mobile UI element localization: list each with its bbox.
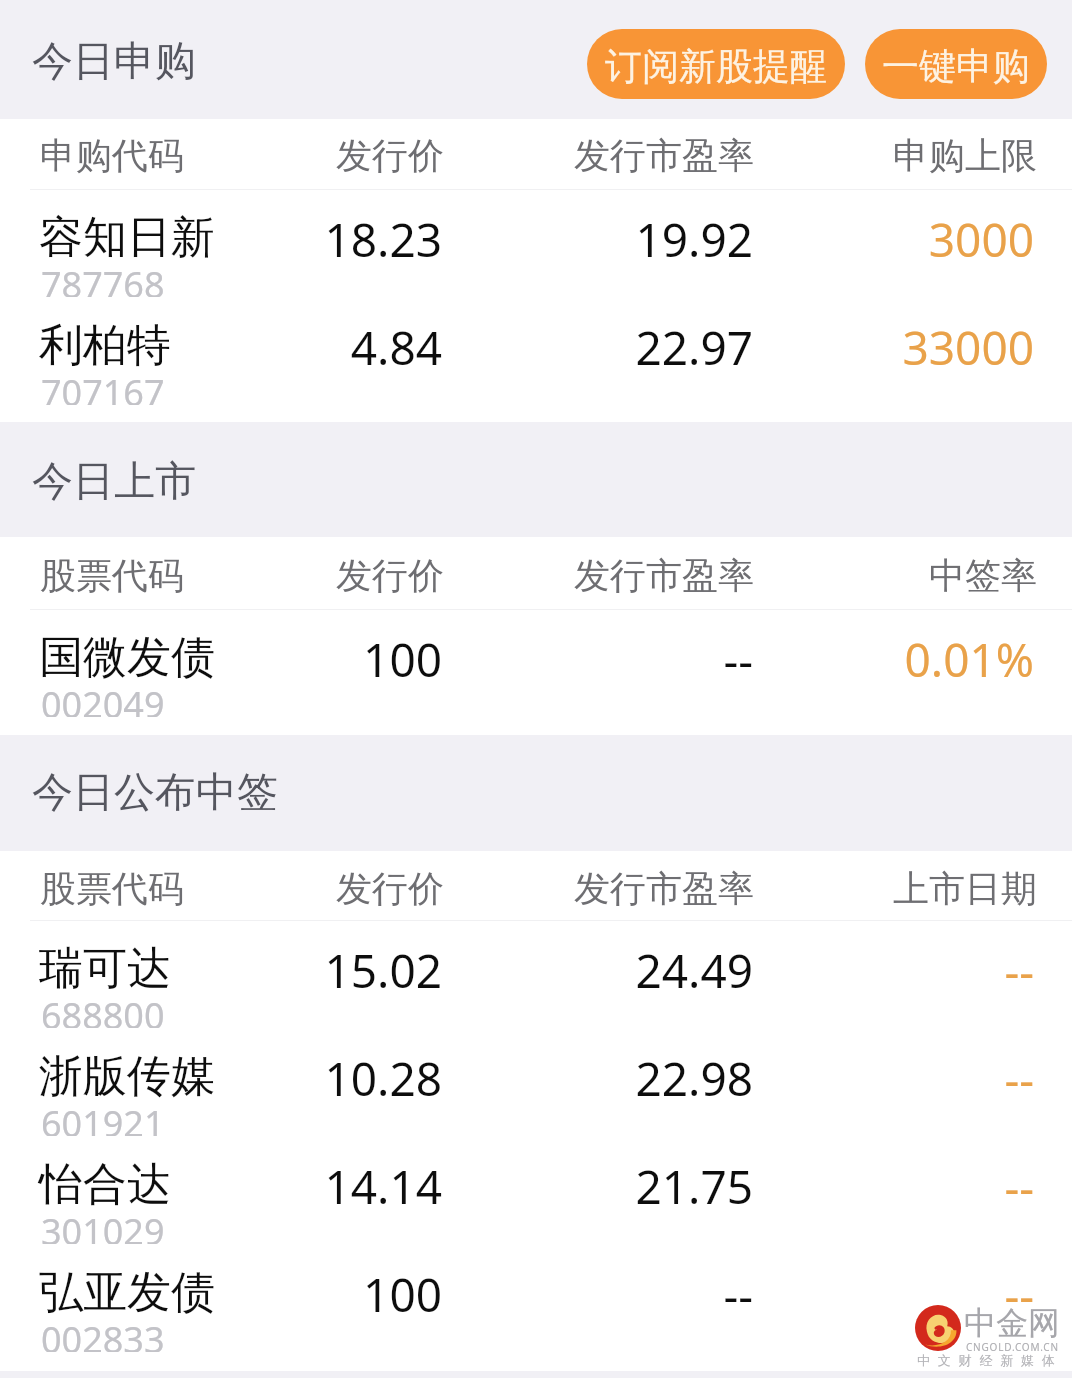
staticText: 787768 [41, 260, 165, 309]
button[interactable]: 容知日新 [0, 189, 1072, 297]
button[interactable]: 国微发债 [0, 609, 1072, 717]
staticText: 601921 [41, 1099, 165, 1148]
staticText: 发行价 [336, 553, 444, 598]
staticText: CNGOLD.COM.CN [966, 1340, 1059, 1354]
staticText: 688800 [41, 991, 165, 1040]
staticText: 100 [0, 628, 442, 691]
staticText: 上市日期 [893, 866, 1037, 911]
staticText: -- [0, 1047, 1034, 1110]
staticText: 中签率 [929, 553, 1037, 598]
staticText: 今日上市 [32, 456, 196, 508]
staticText: 瑞可达 [39, 941, 171, 996]
button[interactable]: 一键申购 [865, 29, 1047, 99]
staticText: -- [0, 628, 753, 691]
staticText: 002833 [41, 1315, 165, 1364]
button[interactable]: 利柏特 [0, 297, 1072, 405]
staticText: 浙版传媒 [39, 1049, 215, 1104]
staticText: 发行市盈率 [574, 553, 754, 598]
button[interactable]: 浙版传媒 [0, 1028, 1072, 1136]
staticText: 4.84 [0, 316, 442, 379]
staticText: 今日申购 [32, 36, 196, 88]
staticText: 002049 [41, 680, 165, 729]
button[interactable]: 瑞可达 [0, 920, 1072, 1028]
staticText: 怡合达 [39, 1157, 171, 1212]
staticText: 申购代码 [40, 133, 184, 178]
staticText: 3000 [0, 208, 1034, 271]
button[interactable]: 怡合达 [0, 1136, 1072, 1244]
button[interactable]: 弘亚发债 [0, 1244, 1072, 1352]
staticText: 发行市盈率 [574, 866, 754, 911]
staticText: 0.01% [0, 628, 1034, 691]
staticText: 15.02 [0, 939, 442, 1002]
staticText: 弘亚发债 [39, 1265, 215, 1320]
staticText: 国微发债 [39, 630, 215, 685]
staticText: 707167 [41, 368, 165, 417]
staticText: 一键申购 [882, 43, 1030, 90]
staticText: 发行价 [336, 866, 444, 911]
staticText: 发行市盈率 [574, 133, 754, 178]
staticText: -- [0, 1155, 1034, 1218]
staticText: 发行价 [336, 133, 444, 178]
staticText: 订阅新股提醒 [605, 43, 827, 90]
staticText: 10.28 [0, 1047, 442, 1110]
staticText: 容知日新 [39, 210, 215, 265]
other: 中金网 logo [915, 1305, 961, 1351]
staticText: 24.49 [0, 939, 753, 1002]
staticText: -- [0, 1263, 1034, 1326]
staticText: 中金网 [964, 1303, 1060, 1343]
staticText: 19.92 [0, 208, 753, 271]
staticText: 22.97 [0, 316, 753, 379]
staticText: 100 [0, 1263, 442, 1326]
staticText: 301029 [41, 1207, 165, 1256]
staticText: 股票代码 [40, 866, 184, 911]
staticText: 申购上限 [893, 133, 1037, 178]
staticText: 18.23 [0, 208, 442, 271]
staticText: 14.14 [0, 1155, 442, 1218]
staticText: 33000 [0, 316, 1034, 379]
button[interactable]: 订阅新股提醒 [587, 29, 845, 99]
staticText: 利柏特 [39, 318, 171, 373]
staticText: 中文财经新媒体 [917, 1352, 1063, 1368]
staticText: 21.75 [0, 1155, 753, 1218]
staticText: 22.98 [0, 1047, 753, 1110]
staticText: -- [0, 939, 1034, 1002]
staticText: -- [0, 1263, 753, 1326]
staticText: 股票代码 [40, 553, 184, 598]
staticText: 今日公布中签 [32, 767, 278, 819]
